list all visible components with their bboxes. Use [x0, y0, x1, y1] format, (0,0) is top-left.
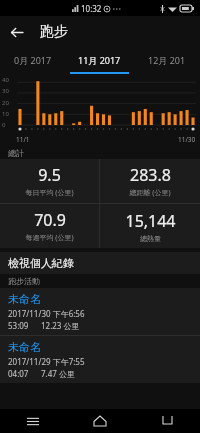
staticText: 11/1: [16, 135, 30, 144]
button[interactable]: 15,144: [100, 204, 200, 248]
staticText: 未命名: [8, 340, 41, 354]
staticText: 0月 2017: [14, 54, 52, 66]
staticText: 總熱量: [140, 234, 161, 243]
button[interactable]: 283.8: [100, 159, 200, 203]
button[interactable]: Recents: [0, 409, 66, 433]
staticText: 未命名: [8, 292, 41, 306]
staticText: 總距離 (公里): [129, 188, 171, 198]
button[interactable]: Home: [66, 409, 133, 433]
button[interactable]: 檢視個人紀錄: [0, 252, 200, 274]
staticText: 每日平均 (公里): [25, 188, 74, 198]
staticText: 總計: [8, 148, 24, 158]
staticText: 53:09: [8, 320, 29, 331]
staticText: 12.23 公里: [41, 320, 80, 331]
staticText: 30: [2, 87, 9, 95]
staticText: 04:07: [8, 368, 29, 379]
staticText: 2017/11/29 下午7:55: [8, 356, 85, 367]
button[interactable]: 9.5: [0, 159, 99, 203]
staticText: 跑步: [40, 23, 68, 41]
staticText: 9.5: [38, 164, 61, 186]
button[interactable]: 11月 2017: [66, 48, 133, 72]
staticText: 10: [2, 110, 9, 118]
staticText: 2017/11/30 下午6:56: [8, 308, 85, 319]
button[interactable]: 12月 201: [133, 48, 200, 72]
staticText: 跑步活動: [8, 276, 40, 286]
button[interactable]: 0月 2017: [0, 48, 66, 72]
staticText: 283.8: [130, 164, 171, 186]
staticText: 11月 2017: [78, 54, 121, 66]
staticText: 10:32: [81, 3, 102, 14]
staticText: 7.47 公里: [41, 368, 75, 379]
button[interactable]: Back: [133, 409, 200, 433]
button[interactable]: Back: [0, 16, 32, 48]
button[interactable]: 未命名: [0, 288, 200, 335]
staticText: 12月 201: [148, 54, 186, 66]
staticText: 40: [2, 76, 9, 84]
button[interactable]: 未命名: [0, 336, 200, 383]
staticText: 70.9: [34, 209, 66, 231]
staticText: 每週平均 (公里): [25, 233, 74, 243]
button[interactable]: 70.9: [0, 204, 99, 248]
staticText: 15,144: [125, 210, 176, 232]
staticText: 檢視個人紀錄: [8, 256, 74, 270]
staticText: 0: [2, 121, 6, 129]
staticText: 20: [2, 99, 9, 107]
staticText: 11/30: [178, 135, 196, 144]
